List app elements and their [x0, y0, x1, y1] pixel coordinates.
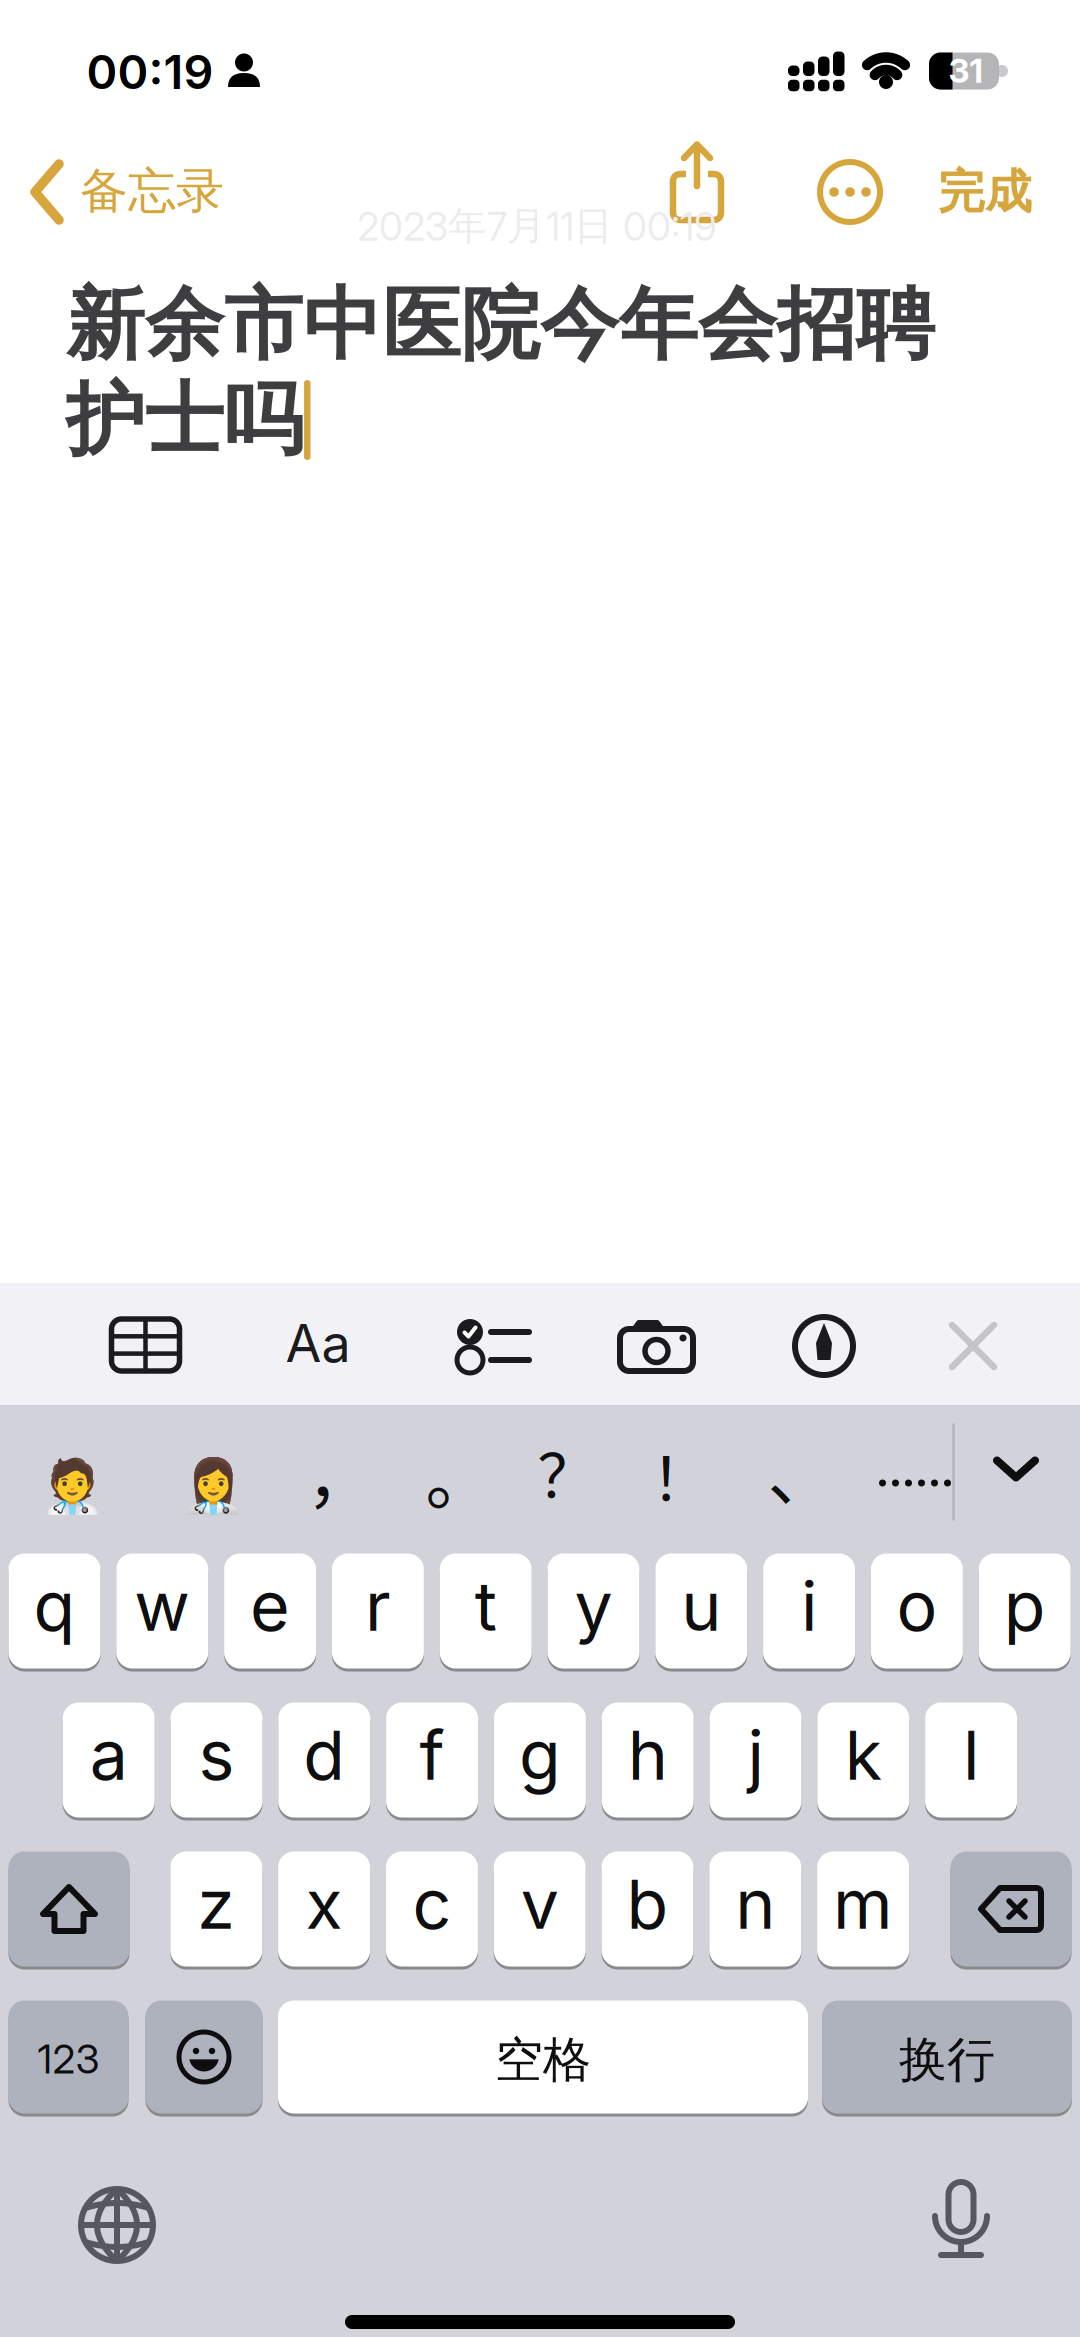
button[interactable]: f — [386, 1701, 478, 1819]
button[interactable]: 换行 — [822, 1999, 1072, 2115]
staticText: g — [519, 1715, 561, 1795]
button[interactable]: j — [709, 1701, 801, 1819]
staticText: Aa — [285, 1312, 350, 1374]
button[interactable] — [77, 2185, 157, 2265]
button[interactable] — [620, 1321, 696, 1373]
button[interactable]: 。 — [425, 1427, 492, 1523]
button[interactable]: ， — [306, 1425, 373, 1521]
staticText: t — [475, 1566, 497, 1646]
staticText: l — [963, 1715, 979, 1795]
button[interactable]: 备忘录 — [30, 159, 224, 225]
button[interactable]: z — [170, 1850, 262, 1968]
button[interactable] — [668, 142, 726, 226]
button[interactable]: l — [925, 1701, 1017, 1819]
button[interactable] — [995, 1458, 1037, 1479]
staticText: z — [197, 1864, 235, 1944]
staticText: n — [735, 1864, 775, 1944]
button[interactable]: c — [386, 1850, 478, 1968]
button[interactable]: ！ — [651, 1432, 710, 1517]
button[interactable]: y — [547, 1552, 639, 1670]
staticText: 00:19 — [86, 44, 213, 100]
button[interactable]: 👩‍⚕️ — [180, 1456, 245, 1516]
staticText: k — [845, 1715, 882, 1795]
staticText: v — [521, 1864, 559, 1944]
button[interactable]: s — [170, 1701, 262, 1819]
staticText: i — [801, 1566, 817, 1646]
button[interactable]: u — [655, 1552, 747, 1670]
staticText: 备忘录 — [80, 161, 224, 220]
button[interactable]: i — [763, 1552, 855, 1670]
staticText: a — [90, 1715, 128, 1795]
button[interactable] — [457, 1318, 537, 1374]
button[interactable]: b — [601, 1850, 693, 1968]
staticText: ？ — [537, 1429, 596, 1514]
staticText: b — [626, 1864, 668, 1944]
staticText: h — [628, 1715, 668, 1795]
button[interactable]: w — [116, 1552, 208, 1670]
staticText: 空格 — [495, 2030, 591, 2089]
staticText: 护士吗 — [66, 372, 303, 468]
staticText: w — [134, 1566, 190, 1646]
button[interactable]: Aa — [285, 1312, 350, 1374]
button[interactable] — [879, 1463, 951, 1503]
button[interactable]: x — [278, 1850, 370, 1968]
staticText: j — [747, 1715, 763, 1795]
staticText: 31 — [948, 51, 983, 90]
staticText: 新余市中医院今年会招聘 — [66, 277, 935, 373]
staticText: 、 — [767, 1423, 834, 1519]
button[interactable]: 🧑‍⚕️ — [39, 1456, 104, 1516]
button[interactable]: 完成 — [938, 163, 1032, 221]
staticText: q — [33, 1566, 75, 1646]
staticText: x — [306, 1864, 343, 1944]
staticText: e — [250, 1566, 290, 1646]
staticText: f — [420, 1715, 445, 1795]
button[interactable]: o — [871, 1552, 963, 1670]
button[interactable]: a — [63, 1701, 155, 1819]
staticText: c — [412, 1864, 451, 1944]
button[interactable]: e — [224, 1552, 316, 1670]
staticText: 换行 — [899, 2030, 995, 2089]
button[interactable]: 、 — [767, 1423, 834, 1519]
staticText: ！ — [651, 1432, 710, 1517]
staticText: ， — [306, 1425, 373, 1521]
button[interactable]: t — [440, 1552, 532, 1670]
staticText: y — [574, 1566, 612, 1646]
button[interactable]: ？ — [537, 1429, 596, 1514]
staticText: 🧑‍⚕️ — [39, 1456, 104, 1516]
staticText: 👩‍⚕️ — [180, 1456, 245, 1516]
button[interactable]: q — [8, 1552, 100, 1670]
staticText: s — [198, 1715, 234, 1795]
button[interactable]: 123 — [8, 1999, 128, 2115]
button[interactable]: g — [494, 1701, 586, 1819]
button[interactable] — [819, 161, 881, 223]
staticText: p — [1004, 1566, 1046, 1646]
button[interactable] — [111, 1319, 179, 1371]
button[interactable]: m — [817, 1850, 909, 1968]
staticText: o — [896, 1566, 937, 1646]
button[interactable]: r — [332, 1552, 424, 1670]
button[interactable] — [931, 2179, 991, 2265]
button[interactable]: v — [494, 1850, 586, 1968]
button[interactable]: p — [979, 1552, 1071, 1670]
staticText: 123 — [37, 2035, 99, 2083]
button[interactable] — [145, 1999, 262, 2115]
button[interactable]: 空格 — [278, 1999, 808, 2115]
staticText: 。 — [425, 1427, 492, 1523]
button[interactable]: k — [817, 1701, 909, 1819]
button[interactable]: n — [709, 1850, 801, 1968]
button[interactable] — [794, 1316, 854, 1376]
button[interactable]: d — [278, 1701, 370, 1819]
staticText: u — [681, 1566, 721, 1646]
button[interactable] — [950, 1323, 996, 1369]
staticText: 2023年7月11日 00:19 — [357, 202, 717, 250]
staticText: r — [365, 1566, 391, 1646]
staticText: d — [303, 1715, 345, 1795]
button[interactable] — [950, 1850, 1071, 1968]
staticText: 完成 — [938, 163, 1032, 221]
staticText: m — [833, 1864, 893, 1944]
button[interactable]: h — [602, 1701, 694, 1819]
button[interactable] — [8, 1850, 129, 1968]
